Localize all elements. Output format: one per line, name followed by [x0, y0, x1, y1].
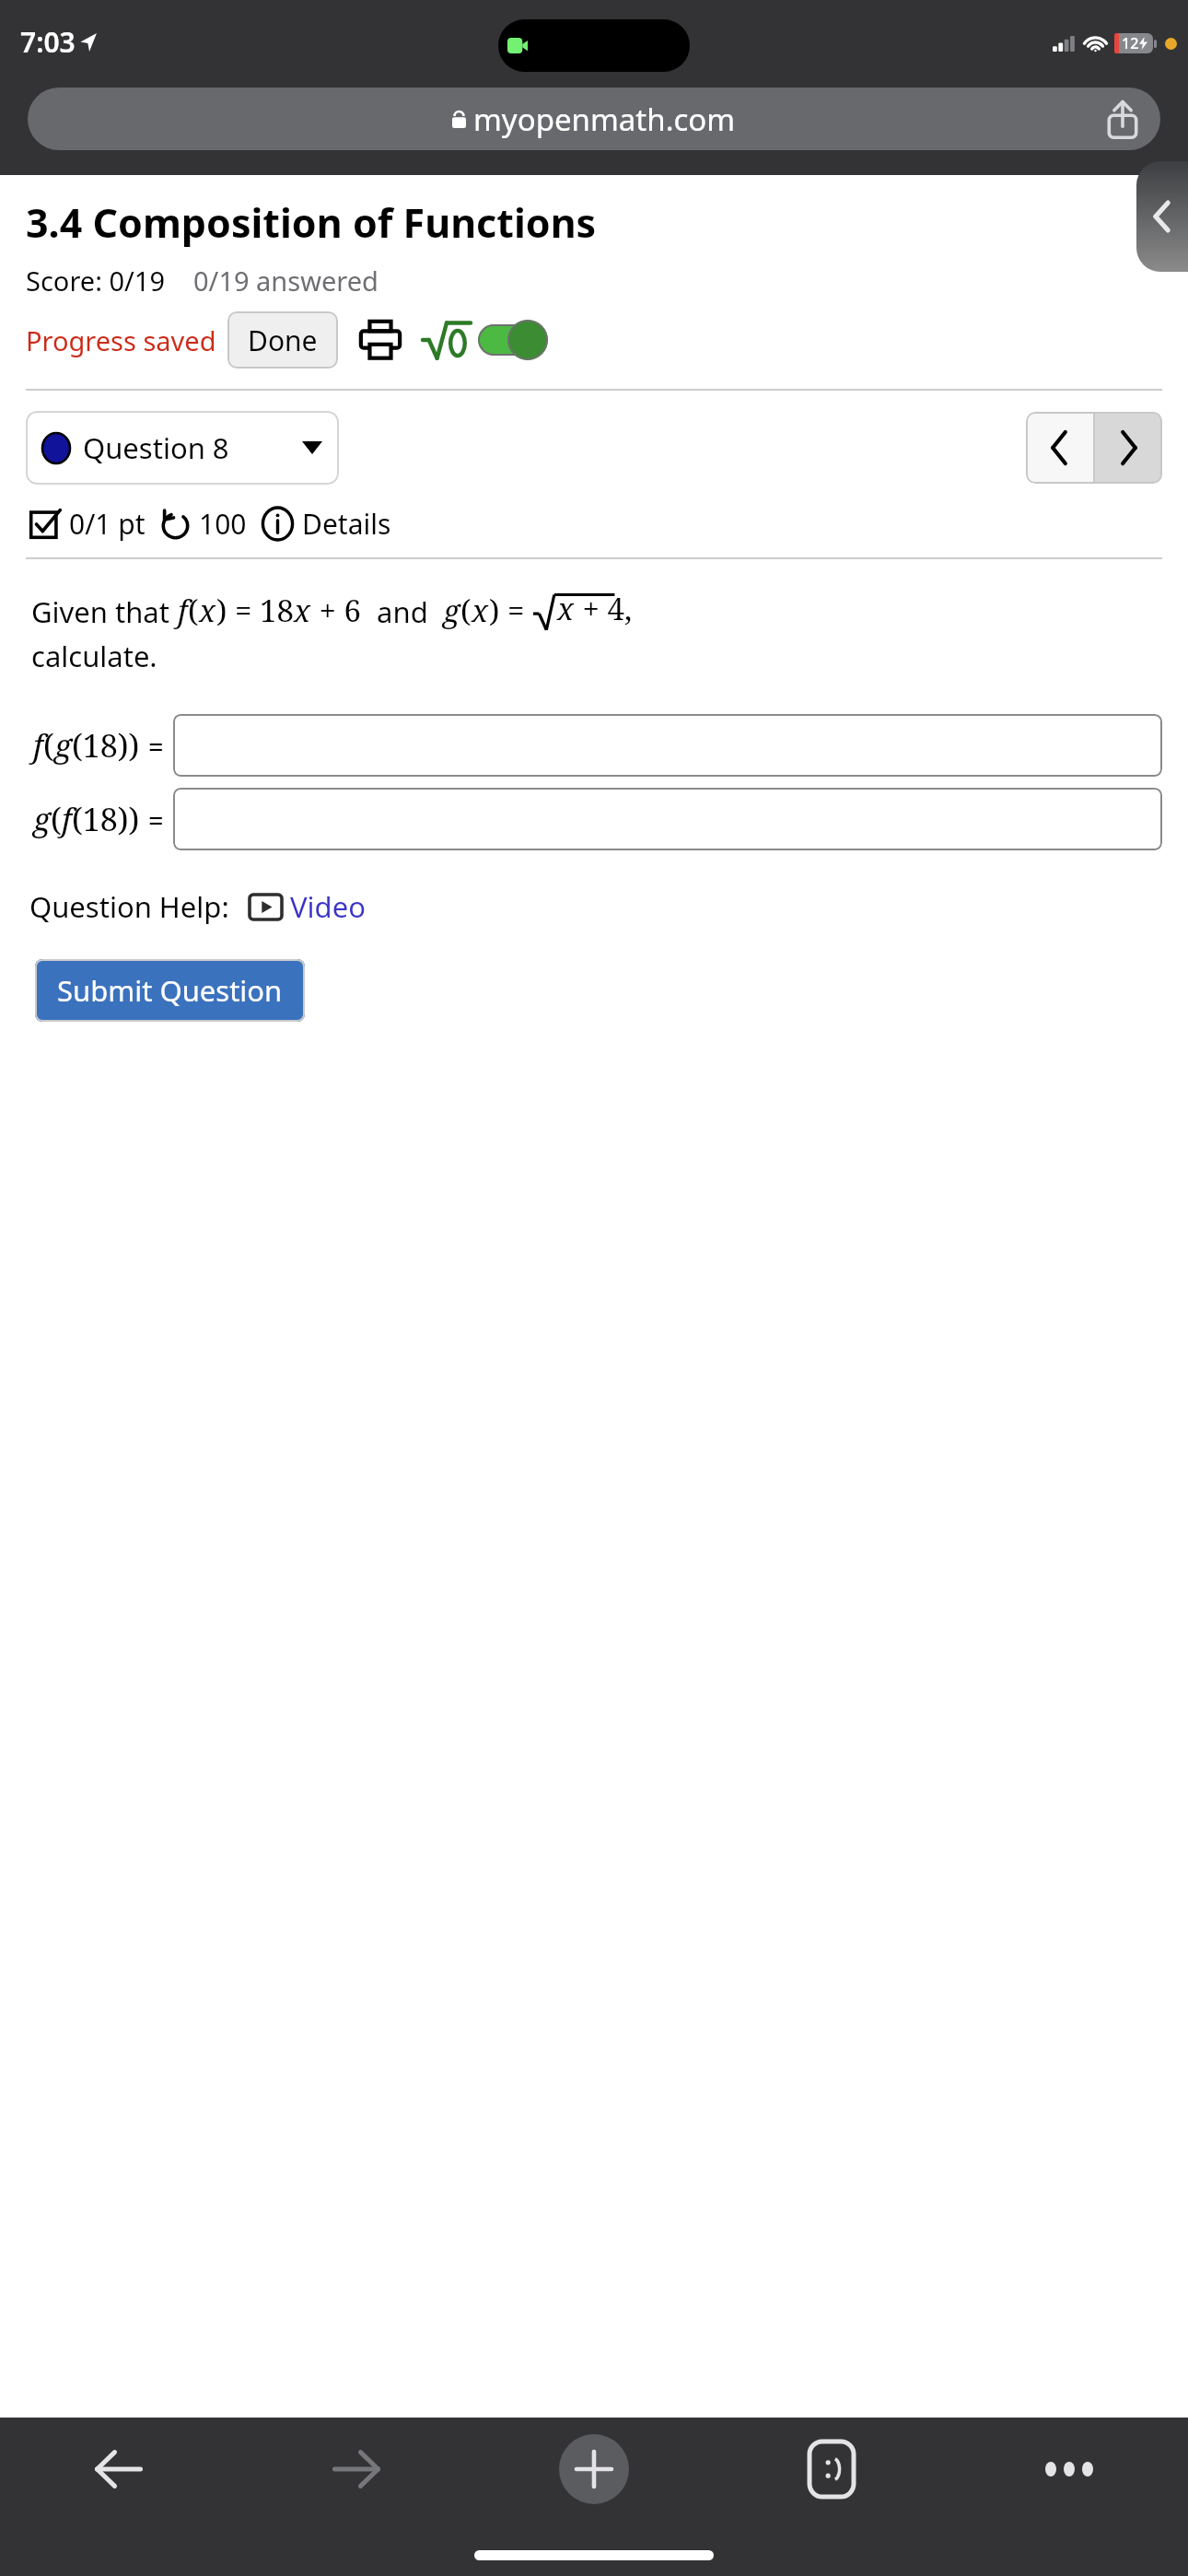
button[interactable]: New tab — [475, 2418, 713, 2521]
staticText: 3.4 Composition of Functions — [26, 195, 597, 250]
staticText: ) = — [489, 590, 533, 631]
staticText: f — [33, 724, 43, 767]
staticText: Score: 0/19 — [26, 263, 166, 299]
button[interactable]: Answer field — [173, 788, 1162, 850]
staticText: Done — [248, 322, 318, 359]
staticText: 12 — [1122, 33, 1139, 53]
staticText: Submit Question — [57, 971, 283, 1010]
staticText: g — [443, 590, 460, 631]
staticText: 100 — [199, 505, 247, 543]
staticText: = — [148, 728, 164, 764]
button[interactable]: Print — [358, 318, 402, 362]
staticText: ( — [188, 590, 199, 631]
staticText: 0/19 answered — [193, 263, 379, 299]
staticText: Video — [290, 887, 366, 926]
button[interactable]: Toggle math view — [476, 320, 548, 360]
staticText: calculate. — [31, 637, 157, 675]
button[interactable]: Share — [1101, 98, 1144, 140]
button[interactable]: Bookmarks — [713, 2418, 950, 2521]
staticText: + 4, — [575, 588, 633, 629]
staticText: g — [33, 798, 51, 840]
button[interactable]: Math input — [423, 320, 471, 360]
staticText: (18)) — [72, 798, 148, 840]
staticText: 7:03 — [20, 23, 76, 61]
staticText: 0/1 pt — [69, 505, 146, 543]
button[interactable]: Next question — [1095, 412, 1162, 484]
button[interactable]: Back — [1136, 161, 1188, 272]
staticText: ( — [460, 590, 472, 631]
button[interactable]: Back — [0, 2418, 238, 2521]
staticText: Question 8 — [83, 428, 229, 467]
staticText: f — [62, 798, 72, 840]
staticText: myopenmath.com — [473, 99, 736, 140]
button[interactable]: Question 8 — [26, 411, 339, 485]
staticText: ) = 18 — [216, 590, 294, 631]
button[interactable]: Video — [250, 887, 366, 926]
staticText: = — [148, 802, 164, 837]
staticText: x — [199, 590, 216, 631]
button[interactable]: myopenmath.com — [28, 88, 1160, 150]
button[interactable]: Previous question — [1026, 412, 1093, 484]
button[interactable]: Forward — [238, 2418, 475, 2521]
staticText: Question Help: — [29, 887, 229, 926]
staticText: x — [557, 588, 575, 629]
staticText: Given that — [31, 592, 178, 631]
button[interactable]: Done — [227, 311, 338, 369]
staticText: ( — [51, 798, 62, 840]
staticText: Progress saved — [26, 322, 216, 358]
staticText: (18)) — [72, 724, 148, 767]
staticText: Details — [302, 505, 391, 543]
staticText: and — [362, 592, 443, 631]
staticText: + 6 — [311, 590, 362, 631]
button[interactable]: Answer field — [173, 714, 1162, 777]
staticText: g — [54, 724, 72, 767]
staticText: x — [472, 590, 489, 631]
staticText: f — [178, 590, 188, 631]
staticText: x — [294, 590, 311, 631]
button[interactable]: Submit Question — [35, 959, 305, 1022]
button[interactable]: More — [950, 2418, 1188, 2521]
button[interactable]: Details — [262, 505, 391, 543]
staticText: ( — [43, 724, 54, 767]
